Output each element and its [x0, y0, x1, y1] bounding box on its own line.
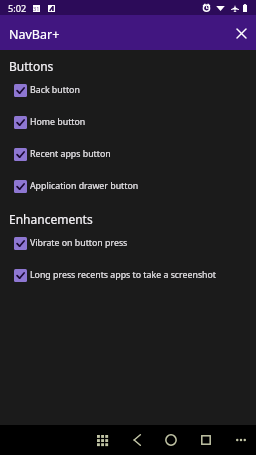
staticText: Buttons	[9, 58, 54, 74]
staticText: NavBar+	[9, 26, 60, 43]
button[interactable]: More	[224, 425, 256, 455]
button[interactable]: Close	[228, 20, 254, 46]
staticText: Home button	[30, 116, 86, 128]
button[interactable]: Home	[154, 425, 188, 455]
staticText: Application drawer button	[30, 180, 139, 192]
staticText: Long press recents apps to take a screen…	[30, 269, 217, 281]
staticText: Vibrate on button press	[30, 237, 128, 249]
button[interactable]: Recent apps button	[0, 138, 256, 170]
staticText: Back button	[30, 84, 80, 96]
staticText: Recent apps button	[30, 148, 111, 160]
staticText: 31	[33, 5, 40, 12]
button[interactable]: Long press recents apps to take a screen…	[0, 259, 256, 291]
button[interactable]: App drawer	[85, 425, 119, 455]
staticText: 5:02	[8, 2, 27, 15]
button[interactable]: Back button	[0, 74, 256, 106]
button[interactable]: Recents	[189, 425, 223, 455]
button[interactable]: Application drawer button	[0, 170, 256, 202]
staticText: Enhancements	[9, 211, 93, 227]
button[interactable]: Vibrate on button press	[0, 227, 256, 259]
button[interactable]: Back	[120, 425, 154, 455]
button[interactable]: Home button	[0, 106, 256, 138]
